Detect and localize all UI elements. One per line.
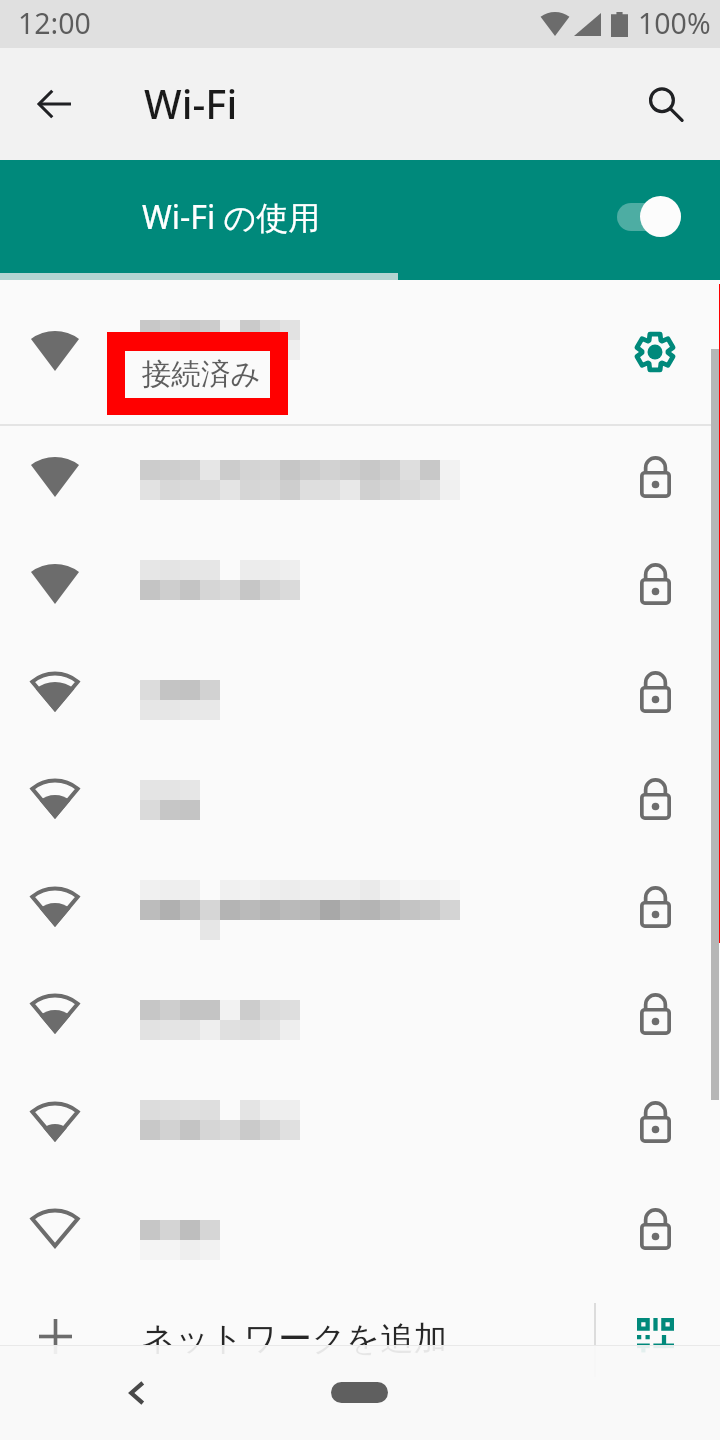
staticText: 接続済み xyxy=(142,356,261,393)
button[interactable]: Wi-Fi の使用 xyxy=(0,160,720,273)
button[interactable]: 接続済み xyxy=(0,280,720,424)
button[interactable] xyxy=(0,533,720,640)
button[interactable]: Back xyxy=(19,68,91,140)
staticText: 12:00 xyxy=(18,4,91,43)
button[interactable]: Search xyxy=(629,68,701,140)
button[interactable]: Back xyxy=(119,1375,155,1411)
button[interactable] xyxy=(0,1178,720,1285)
button[interactable]: Scan QR code xyxy=(619,1300,691,1372)
button[interactable] xyxy=(0,748,720,855)
staticText: Wi-Fi xyxy=(144,76,238,130)
staticText: Wi-Fi の使用 xyxy=(142,195,321,239)
staticText: 100% xyxy=(638,4,711,43)
button[interactable] xyxy=(0,426,720,533)
button[interactable]: ネットワークを追加 xyxy=(0,1286,720,1393)
button[interactable] xyxy=(0,963,720,1070)
staticText: 接続済み xyxy=(142,337,261,374)
button[interactable] xyxy=(0,641,720,748)
button[interactable]: Network settings xyxy=(619,316,691,388)
button[interactable]: Home xyxy=(331,1382,388,1403)
button[interactable] xyxy=(0,1071,720,1178)
button[interactable] xyxy=(0,856,720,963)
staticText: ネットワークを追加 xyxy=(141,1318,448,1360)
